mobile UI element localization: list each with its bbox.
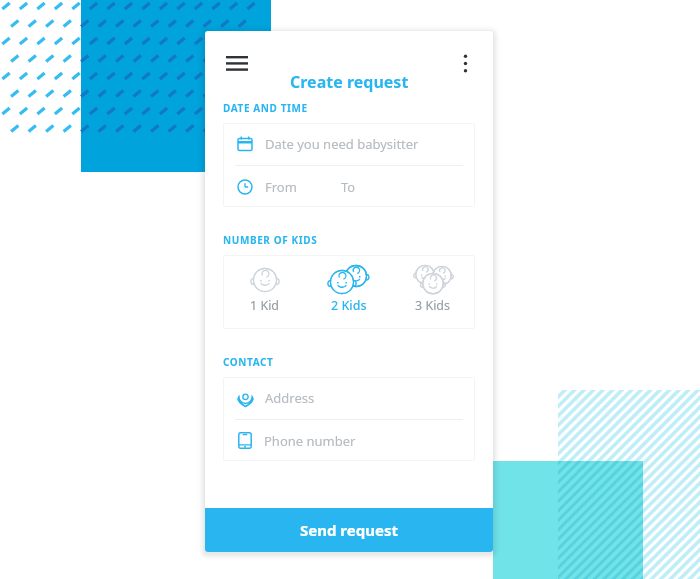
staticText: DATE AND TIME <box>223 101 308 115</box>
staticText: Create request <box>290 71 409 93</box>
button[interactable]: From <box>223 166 475 207</box>
staticText: To <box>341 178 356 196</box>
button[interactable]: Send request <box>205 508 493 552</box>
staticText: Address <box>265 389 315 407</box>
staticText: NUMBER OF KIDS <box>223 233 318 247</box>
staticText: CONTACT <box>223 355 274 369</box>
staticText: 2 Kids <box>331 297 367 314</box>
staticText: 3 Kids <box>415 297 451 314</box>
button[interactable]: More options <box>447 45 483 81</box>
button[interactable]: 3 Kids <box>391 255 475 329</box>
button[interactable]: Date you need babysitter <box>223 123 475 165</box>
staticText: From <box>265 178 297 196</box>
button[interactable]: 2 Kids <box>307 255 391 329</box>
staticText: Send request <box>300 520 398 540</box>
staticText: 1 Kid <box>250 297 280 314</box>
button[interactable]: Menu <box>219 45 255 81</box>
button[interactable]: Address <box>223 377 475 419</box>
staticText: Phone number <box>264 432 356 450</box>
button[interactable]: Phone number <box>223 420 475 461</box>
staticText: Date you need babysitter <box>265 135 419 153</box>
button[interactable]: 1 Kid <box>223 255 307 329</box>
